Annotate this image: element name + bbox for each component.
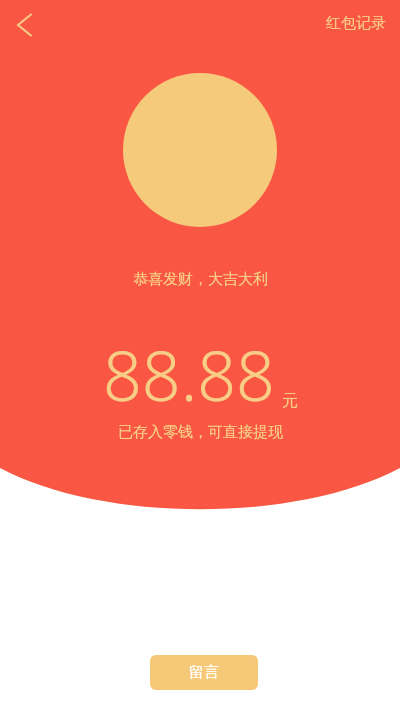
staticText: 88.88 (103, 328, 275, 421)
staticText: 红包记录 (326, 14, 386, 33)
button[interactable]: Back (4, 5, 44, 45)
staticText: 已存入零钱，可直接提现 (118, 423, 283, 442)
staticText: 元 (282, 391, 298, 411)
staticText: 留言 (189, 663, 219, 682)
button[interactable]: 留言 (150, 655, 258, 690)
staticText: 恭喜发财，大吉大利 (133, 270, 268, 289)
button[interactable]: 红包记录 (318, 6, 394, 41)
